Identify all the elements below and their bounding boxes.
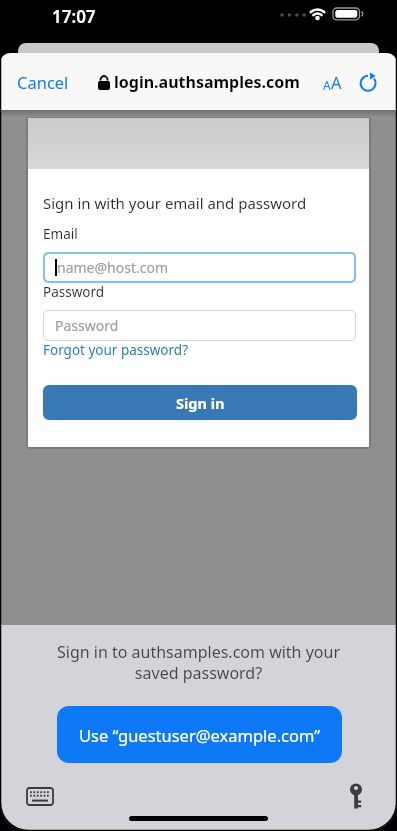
button[interactable]: Cancel	[17, 71, 69, 93]
staticText: Sign in with your email and password	[43, 193, 307, 213]
button[interactable]: Sign in	[43, 385, 357, 420]
staticText: Sign in to authsamples.com with your	[0, 641, 397, 663]
staticText: A	[323, 77, 331, 93]
staticText: 17:07	[52, 5, 96, 28]
button[interactable]	[349, 783, 365, 810]
staticText: Use “guestuser@example.com”	[79, 724, 321, 746]
button[interactable]	[26, 787, 54, 807]
button[interactable]: Forgot your password?	[43, 341, 189, 359]
button[interactable]: Use “guestuser@example.com”	[57, 706, 342, 763]
staticText: Sign in	[176, 393, 225, 413]
staticText: login.authsamples.com	[114, 71, 300, 93]
button[interactable]	[358, 72, 378, 92]
staticText: Email	[43, 225, 78, 243]
staticText: saved password?	[0, 662, 397, 684]
staticText: Forgot your password?	[43, 341, 189, 359]
staticText: Password	[55, 316, 119, 335]
staticText: name@host.com	[57, 258, 168, 277]
button[interactable]: Password	[44, 311, 355, 340]
button[interactable]: name@host.com	[45, 254, 354, 281]
staticText: A	[331, 71, 342, 93]
staticText: Cancel	[17, 71, 69, 93]
staticText: Password	[43, 283, 105, 301]
button[interactable]: A	[323, 71, 342, 93]
